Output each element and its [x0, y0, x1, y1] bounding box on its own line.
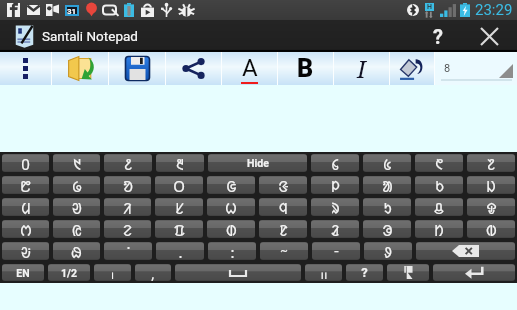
button[interactable]: ᱘ [2, 176, 49, 194]
button[interactable]: ᱟ [363, 176, 411, 194]
button[interactable]: ᱥ [155, 198, 203, 216]
button[interactable]: ᱝ [259, 176, 307, 194]
staticText: ᱖ [435, 154, 443, 172]
staticText: ᱓ [176, 154, 184, 172]
staticText: 8 [444, 62, 451, 75]
button[interactable]: ᱔ [311, 154, 359, 172]
button[interactable]: Italic [334, 52, 389, 85]
button[interactable]: ᱒ [104, 154, 152, 172]
button[interactable]: ᱯ [155, 220, 203, 238]
button[interactable]: ᱫ [467, 198, 515, 216]
button[interactable]: Backspace [416, 242, 515, 260]
button[interactable]: 1/2 [48, 264, 90, 281]
button[interactable]: Enter [433, 264, 515, 281]
button[interactable]: ᱬ [2, 220, 49, 238]
button[interactable]: 8 [435, 52, 517, 85]
button[interactable]: ᱴ [415, 220, 463, 238]
button[interactable]: ᱺ [208, 242, 256, 260]
button[interactable]: ᱽ [364, 242, 412, 260]
button[interactable]: ᱱ [259, 220, 307, 238]
button[interactable]: Help [413, 20, 463, 52]
staticText: Hide [247, 157, 269, 169]
button[interactable]: ᱿ [305, 264, 342, 281]
button[interactable]: Close [463, 20, 515, 52]
button[interactable]: ᱲ [311, 220, 359, 238]
button[interactable]: Open [52, 52, 108, 85]
button[interactable]: ᱕ [363, 154, 411, 172]
button[interactable]: ᱪ [415, 198, 463, 216]
button[interactable]: ᱞ [311, 176, 359, 194]
button[interactable]: ᱦ [207, 198, 255, 216]
button[interactable]: ᱡ [467, 176, 515, 194]
staticText: ᱯ [174, 220, 185, 238]
staticText: ᱦ [225, 198, 237, 216]
button[interactable]: ᱷ [53, 242, 100, 260]
button[interactable]: ᱗ [467, 154, 515, 172]
button[interactable]: Fill colour [390, 52, 434, 85]
staticText: ᱚ [123, 176, 133, 194]
button[interactable]: ᱧ [259, 198, 307, 216]
staticText: ᱬ [20, 220, 32, 238]
button[interactable]: ᱩ [363, 198, 411, 216]
button[interactable]: ᱓ [156, 154, 204, 172]
staticText: ᱼ [334, 242, 339, 260]
button[interactable]: ? [346, 264, 383, 281]
staticText: ᱪ [434, 198, 444, 216]
button[interactable]: ᱮ [104, 220, 151, 238]
staticText: , [151, 264, 155, 281]
button[interactable]: Save [109, 52, 165, 85]
staticText: ᱫ [486, 198, 497, 216]
staticText: ᱕ [383, 154, 392, 172]
staticText: ᱗ [487, 154, 495, 172]
button[interactable]: ᱨ [311, 198, 359, 216]
staticText: ᱢ [21, 198, 31, 216]
button[interactable]: ᱜ [207, 176, 255, 194]
button[interactable]: EN [2, 264, 44, 281]
button[interactable]: ᱚ [104, 176, 151, 194]
staticText: I [357, 52, 366, 85]
button[interactable]: ᱹ [156, 242, 204, 260]
button[interactable]: ᱰ [207, 220, 255, 238]
staticText: ᱭ [72, 220, 82, 238]
button[interactable]: , [135, 264, 171, 281]
button[interactable]: Hide [208, 154, 307, 172]
button[interactable]: ᱾ [94, 264, 131, 281]
staticText: ᱸ [126, 242, 131, 260]
staticText: ᱟ [382, 176, 393, 194]
button[interactable]: ᱐ [2, 154, 49, 172]
staticText: ᱱ [279, 220, 288, 238]
button[interactable]: ᱶ [2, 242, 49, 260]
staticText: ᱥ [175, 198, 184, 216]
button[interactable]: ᱭ [53, 220, 100, 238]
staticText: ᱑ [73, 154, 81, 172]
staticText: ? [361, 265, 368, 280]
button[interactable]: More options [0, 52, 51, 85]
staticText: ᱿ [320, 264, 328, 281]
staticText: ? [433, 25, 443, 48]
button[interactable]: ᱛ [155, 176, 203, 194]
button[interactable]: ᱙ [53, 176, 100, 194]
button[interactable]: ᱢ [2, 198, 49, 216]
button[interactable]: ᱸ [104, 242, 152, 260]
staticText: ᱷ [71, 242, 82, 260]
button[interactable]: Text colour [222, 52, 277, 85]
button[interactable]: Shift [387, 264, 429, 281]
button[interactable]: Space [175, 264, 301, 281]
button[interactable]: ᱻ [260, 242, 308, 260]
button[interactable]: ᱠ [415, 176, 463, 194]
button[interactable]: ᱑ [53, 154, 100, 172]
staticText: ᱙ [72, 176, 82, 194]
staticText: ᱶ [21, 242, 31, 260]
staticText: ᱡ [486, 176, 496, 194]
button[interactable]: ᱳ [363, 220, 411, 238]
button[interactable]: Share [166, 52, 221, 85]
button[interactable]: ᱼ [312, 242, 360, 260]
staticText: ᱳ [382, 220, 393, 238]
staticText: ᱠ [435, 176, 444, 194]
button[interactable]: ᱣ [53, 198, 100, 216]
staticText: H [427, 3, 432, 11]
button[interactable]: ᱖ [415, 154, 463, 172]
button[interactable]: ᱵ [467, 220, 515, 238]
button[interactable]: ᱤ [104, 198, 151, 216]
button[interactable]: Bold [278, 52, 333, 85]
